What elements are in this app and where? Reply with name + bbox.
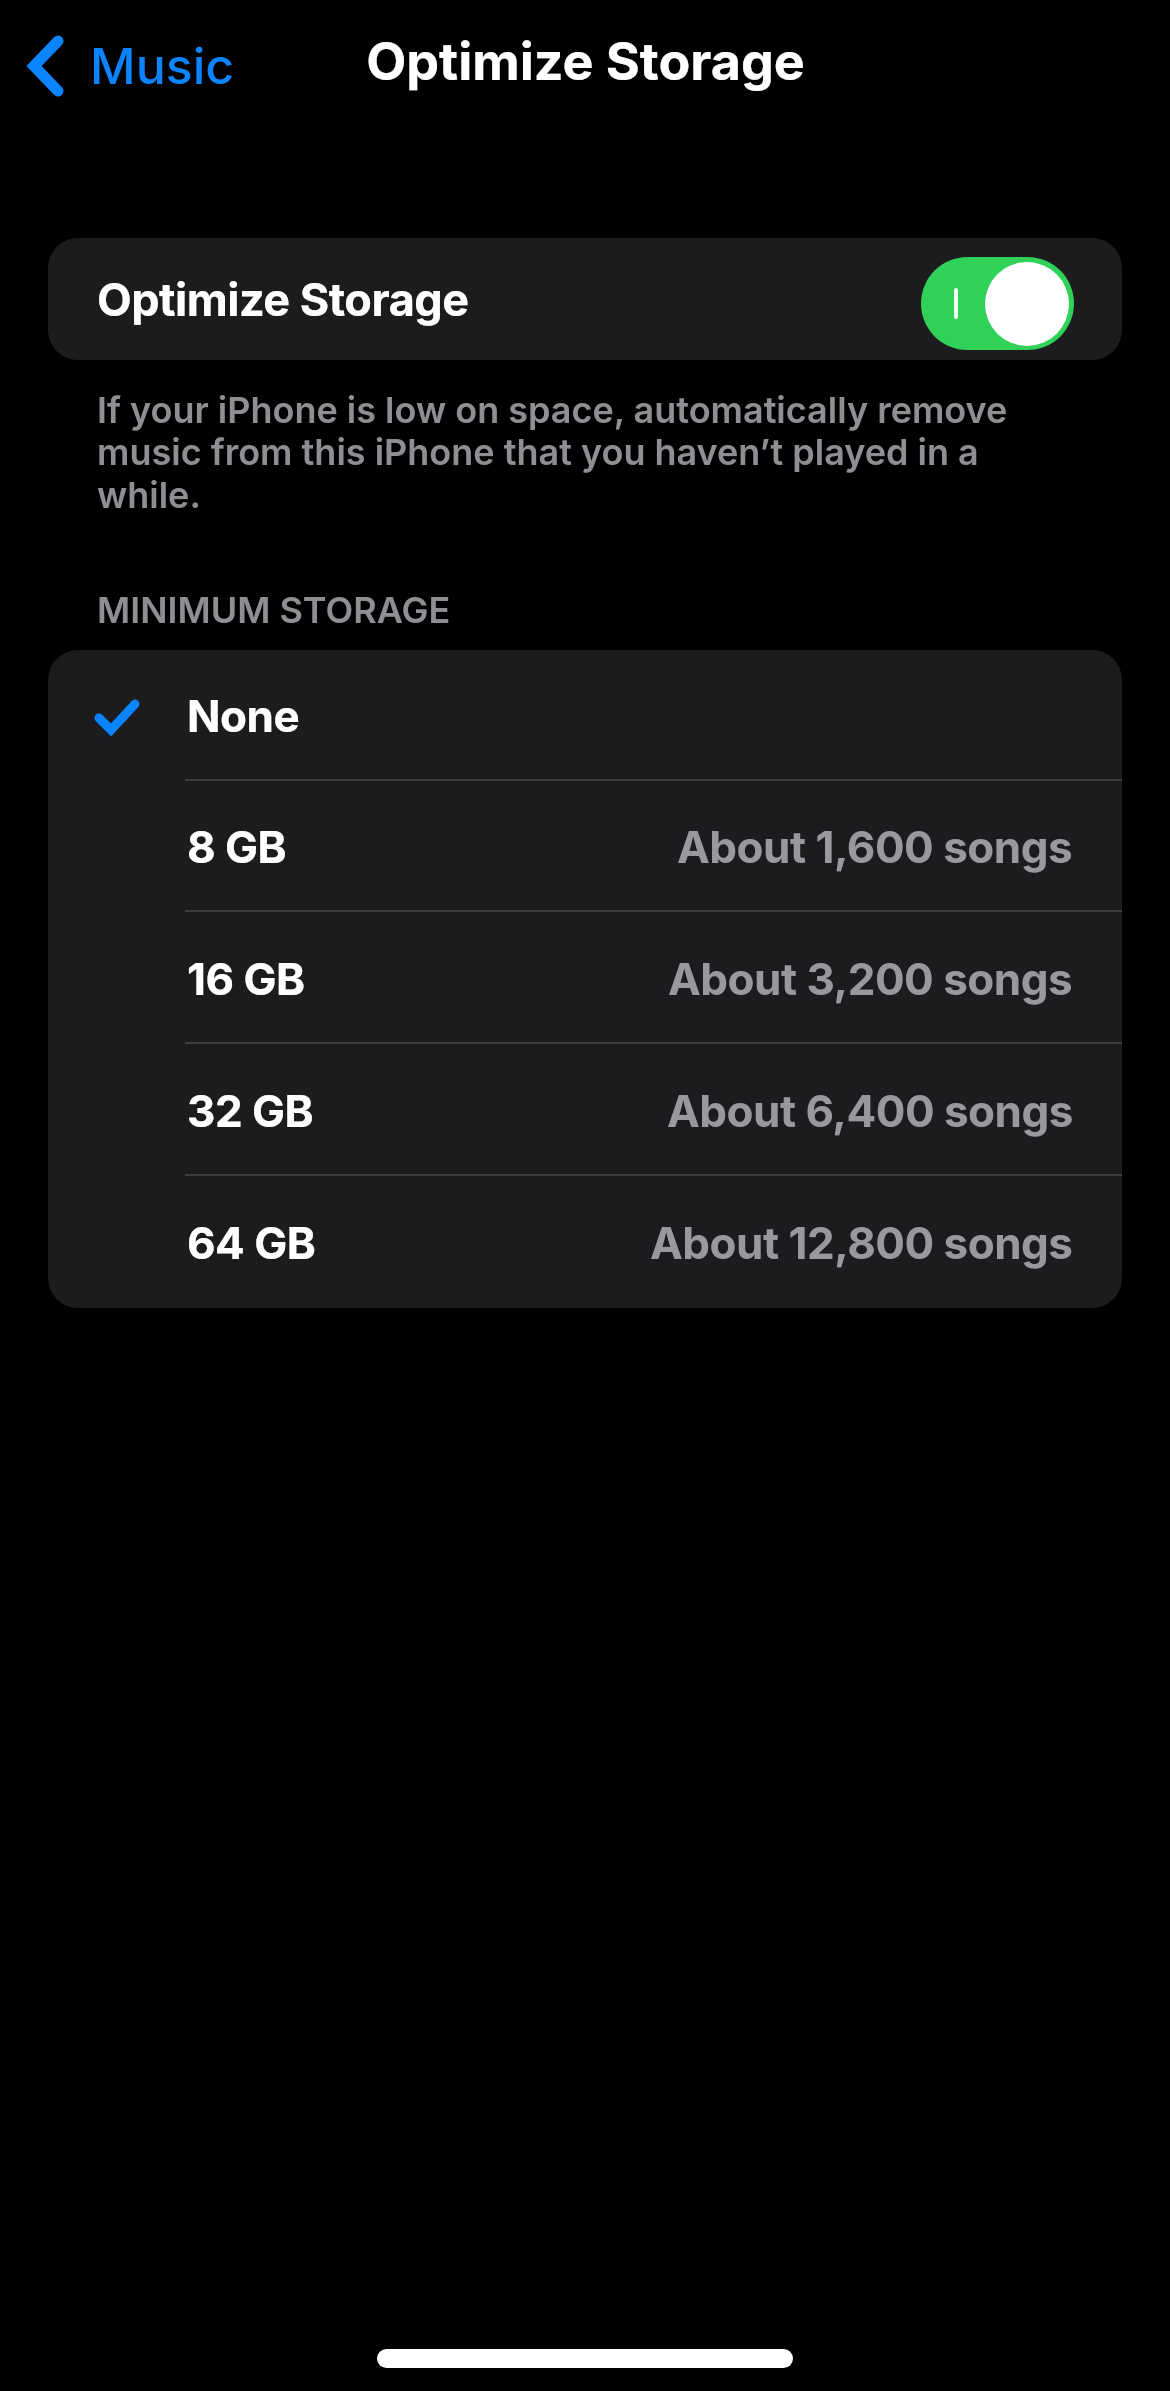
staticText: If your iPhone is low on space, automati…	[97, 388, 1008, 517]
button[interactable]: 32 GB	[48, 1044, 1122, 1176]
staticText: Optimize Storage	[97, 272, 469, 326]
staticText: 32 GB	[187, 1084, 314, 1137]
staticText: 64 GB	[187, 1216, 316, 1269]
staticText: None	[187, 689, 300, 742]
staticText: Music	[90, 36, 235, 96]
staticText: About 1,600 songs	[677, 820, 1073, 873]
button[interactable]: Optimize Storage	[48, 238, 1122, 360]
staticText: About 12,800 songs	[650, 1216, 1073, 1269]
staticText: 16 GB	[187, 952, 305, 1005]
staticText: About 6,400 songs	[667, 1084, 1073, 1137]
button[interactable]: None	[48, 650, 1122, 781]
button[interactable]: 64 GB	[48, 1176, 1122, 1308]
staticText: 8 GB	[187, 820, 287, 873]
button[interactable]: 16 GB	[48, 912, 1122, 1044]
button[interactable]: 8 GB	[48, 781, 1122, 912]
staticText: MINIMUM STORAGE	[97, 588, 451, 632]
button[interactable]: Music	[14, 22, 235, 110]
staticText: About 3,200 songs	[668, 952, 1073, 1005]
staticText: Optimize Storage	[366, 30, 805, 93]
